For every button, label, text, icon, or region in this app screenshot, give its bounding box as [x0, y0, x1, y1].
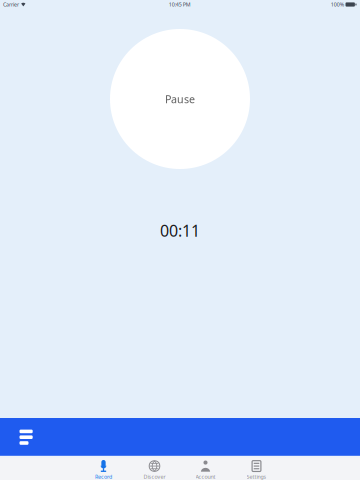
staticText: Account — [195, 473, 215, 480]
button[interactable]: Record — [78, 460, 129, 480]
staticText: Carrier — [3, 1, 19, 8]
staticText: 00:11 — [160, 220, 200, 241]
button[interactable]: Pause — [110, 29, 250, 169]
staticText: Discover — [143, 473, 165, 480]
button[interactable]: Settings — [231, 460, 282, 480]
staticText: 100% — [331, 1, 344, 8]
button[interactable]: Account — [180, 460, 231, 480]
staticText: 10:45 PM — [169, 1, 191, 8]
button[interactable]: Menu — [0, 418, 46, 456]
button[interactable]: Discover — [129, 460, 180, 480]
staticText: Record — [95, 473, 112, 480]
staticText: Settings — [246, 473, 266, 480]
staticText: Pause — [165, 92, 195, 106]
